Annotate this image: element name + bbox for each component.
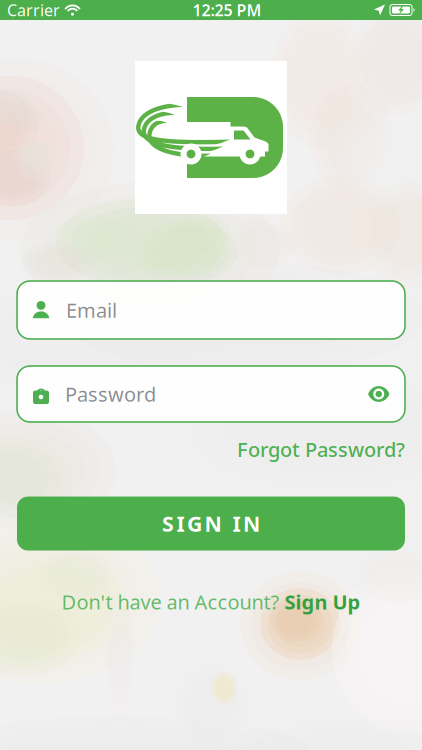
button[interactable]: SIGN IN [17,497,405,551]
staticText: Password [65,381,156,407]
staticText: Forgot Password? [237,436,405,463]
button[interactable]: Email [17,281,405,339]
staticText: SIGN IN [162,509,260,538]
staticText: Carrier [7,0,60,21]
staticText: Sign Up [284,589,360,615]
staticText: Don't have an Account? [61,589,284,615]
button[interactable]: Forgot Password? [237,436,405,463]
button[interactable]: Password [17,366,405,422]
button[interactable]: Don't have an Account? [61,589,360,615]
staticText: 12:25 PM [192,0,261,21]
staticText: Email [66,297,117,323]
